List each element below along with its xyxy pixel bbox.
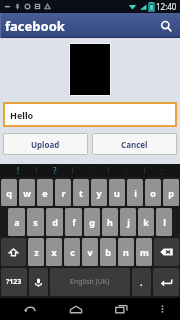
staticText: a [14, 216, 20, 228]
button[interactable]: Cancel [92, 133, 177, 155]
staticText: j [127, 216, 130, 228]
button[interactable]: m [136, 238, 152, 266]
staticText: ! [17, 165, 20, 176]
button[interactable]: e [37, 179, 53, 206]
button[interactable]: More options [151, 298, 174, 320]
staticText: ; [161, 165, 164, 176]
staticText: d [52, 216, 58, 228]
button[interactable]: ? [37, 164, 72, 177]
staticText: i [134, 187, 137, 199]
staticText: f [72, 216, 76, 228]
staticText: s [33, 216, 38, 228]
button[interactable]: i [127, 179, 143, 206]
staticText: n [123, 246, 129, 258]
staticText: b [105, 246, 111, 258]
button[interactable]: Backspace [154, 238, 179, 266]
staticText: e [42, 187, 48, 199]
staticText: ?123 [6, 277, 22, 287]
button[interactable]: p [163, 179, 179, 206]
button[interactable]: f [65, 208, 82, 236]
button[interactable]: v [82, 238, 98, 266]
button[interactable]: Recent apps [107, 298, 136, 320]
staticText: r [61, 187, 66, 199]
staticText: facebook [5, 17, 65, 35]
staticText: 12:40 [156, 1, 177, 12]
button[interactable]: q [1, 179, 17, 206]
button[interactable]: . [132, 268, 151, 296]
staticText: g [89, 216, 95, 228]
staticText: Upload [31, 139, 60, 150]
staticText: English (UK) [70, 277, 110, 287]
staticText: y [96, 187, 102, 199]
button[interactable]: o [145, 179, 161, 206]
staticText: Cancel [121, 139, 148, 150]
button[interactable]: s [27, 208, 44, 236]
button[interactable]: h [102, 208, 118, 236]
button[interactable]: z [28, 238, 44, 266]
staticText: ? [53, 165, 57, 176]
button[interactable]: y [91, 179, 107, 206]
button[interactable]: Voice input [29, 268, 48, 296]
button[interactable]: d [46, 208, 63, 236]
staticText: v [87, 246, 93, 258]
button[interactable]: u [109, 179, 125, 206]
button[interactable]: Search [152, 13, 180, 38]
button[interactable]: ! [0, 164, 36, 177]
staticText: o [150, 187, 156, 199]
staticText: q [6, 187, 12, 199]
button[interactable]: Shift [1, 238, 26, 266]
staticText: m [140, 246, 149, 258]
button[interactable]: Home [61, 298, 90, 320]
button[interactable]: k [138, 208, 154, 236]
button[interactable]: b [100, 238, 116, 266]
staticText: x [51, 246, 57, 258]
staticText: u [114, 187, 120, 199]
button[interactable]: ?123 [1, 268, 27, 296]
staticText: z [34, 246, 39, 258]
button[interactable]: j [120, 208, 136, 236]
button[interactable]: a [8, 208, 25, 236]
staticText: Hello [10, 109, 34, 121]
button[interactable]: Back [15, 298, 44, 320]
staticText: c [70, 246, 75, 258]
button[interactable]: Enter [153, 268, 179, 296]
staticText: t [79, 187, 83, 199]
button[interactable]: n [118, 238, 134, 266]
button[interactable]: t [73, 179, 89, 206]
button[interactable]: Hello [5, 104, 175, 125]
button[interactable]: Upload [3, 133, 88, 155]
staticText: l [163, 216, 166, 228]
staticText: : [125, 165, 128, 176]
button[interactable]: English (UK) [50, 268, 130, 296]
staticText: w [23, 187, 31, 199]
staticText: p [168, 187, 174, 199]
staticText: k [143, 216, 149, 228]
button[interactable]: l [156, 208, 172, 236]
staticText: . [140, 276, 143, 288]
button[interactable]: x [46, 238, 62, 266]
staticText: ' [90, 165, 92, 176]
button[interactable]: r [55, 179, 71, 206]
staticText: h [107, 216, 113, 228]
button[interactable]: g [84, 208, 100, 236]
button[interactable]: w [19, 179, 35, 206]
button[interactable]: c [64, 238, 80, 266]
